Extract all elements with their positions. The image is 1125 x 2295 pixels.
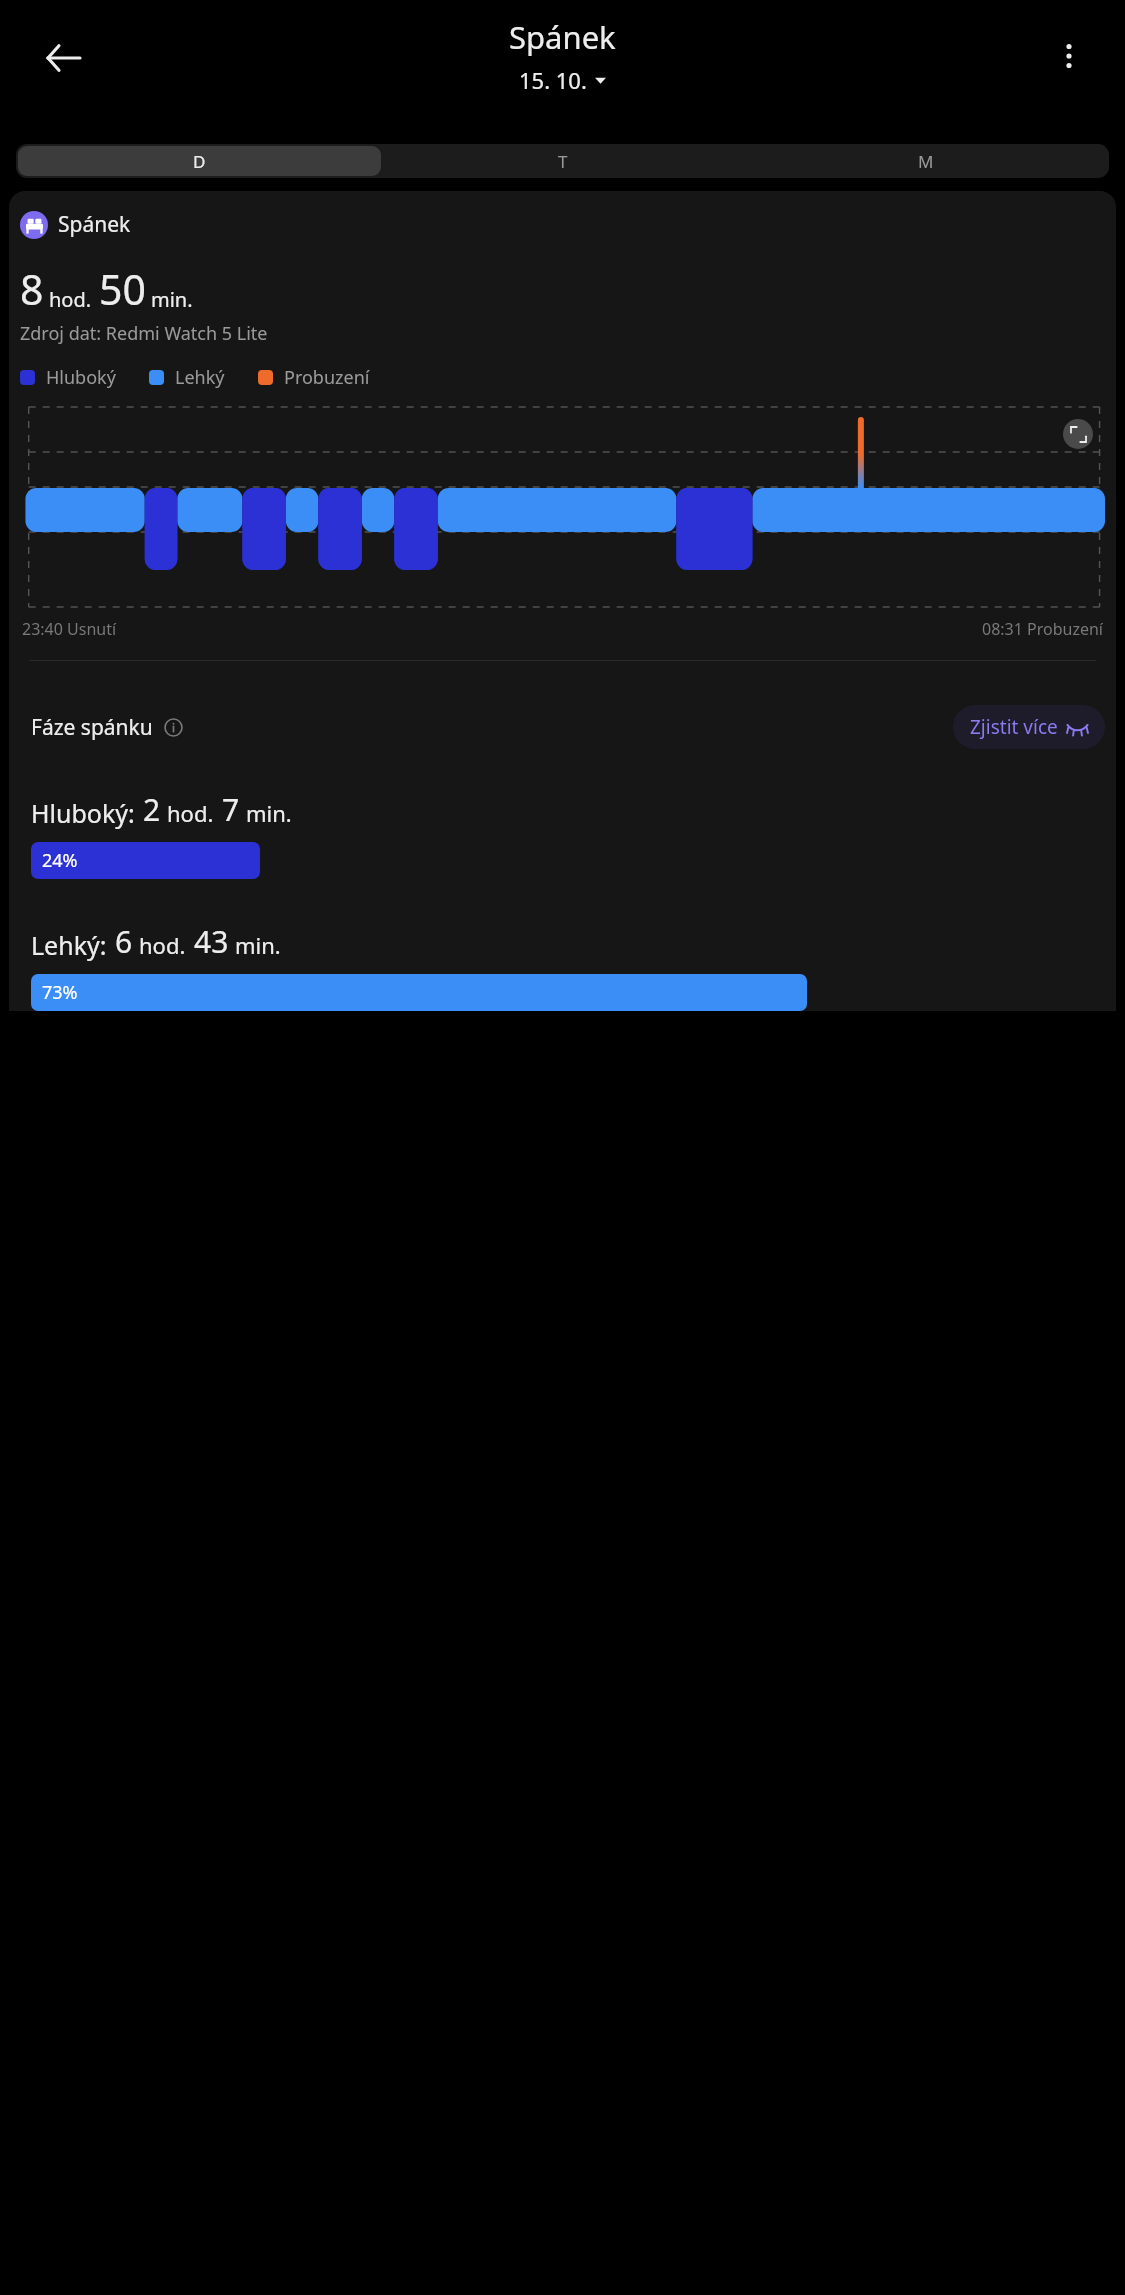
staticText: 43 [194,921,229,962]
staticText: min. [246,798,292,828]
staticText: Lehký [175,365,225,390]
staticText: 24% [42,848,78,873]
staticText: 6 [115,921,133,962]
staticText: min. [235,930,281,960]
staticText: 2 [143,789,161,830]
staticText: Zjistit více [970,714,1058,740]
staticText: hod. [49,286,92,313]
button[interactable]: Info [162,716,184,738]
staticText: Fáze spánku [31,713,153,742]
button[interactable]: Back [36,30,92,86]
staticText: Zdroj dat: Redmi Watch 5 Lite [20,321,268,346]
button[interactable]: Zjistit více [953,705,1105,749]
button[interactable]: 15. 10. [515,63,610,97]
button[interactable]: Expand chart [1063,419,1093,449]
staticText: 73% [42,980,78,1005]
staticText: Spánek [58,210,131,239]
staticText: 15. 10. [519,65,587,95]
staticText: Lehký: [31,928,107,962]
button[interactable]: T [381,146,744,176]
staticText: 23:40 Usnutí [22,618,117,640]
staticText: hod. [139,930,186,960]
button[interactable]: More options [1039,26,1099,86]
staticText: Probuzení [284,365,370,390]
staticText: Spánek [509,16,616,58]
staticText: 08:31 Probuzení [982,618,1103,640]
staticText: 8 [20,261,44,317]
staticText: Hluboký [46,365,116,390]
staticText: 7 [222,789,240,830]
staticText: Hluboký: [31,796,135,830]
staticText: hod. [167,798,214,828]
staticText: M [918,150,934,173]
staticText: min. [151,286,193,313]
staticText: T [558,150,568,173]
button[interactable]: D [18,146,381,176]
staticText: D [193,150,206,173]
staticText: 50 [99,261,146,317]
button[interactable]: M [744,146,1107,176]
